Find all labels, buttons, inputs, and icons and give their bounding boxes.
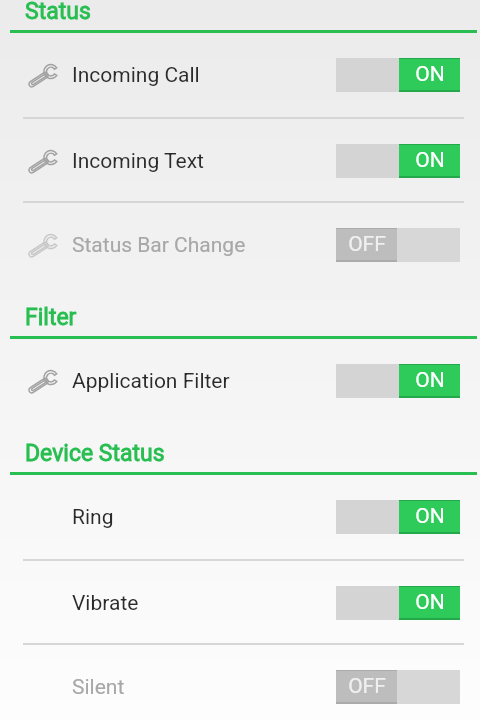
button[interactable]: Incoming Call: [0, 33, 480, 117]
button[interactable]: Toggle on: [336, 58, 460, 92]
staticText: Ring: [72, 505, 114, 530]
staticText: Incoming Text: [72, 149, 204, 174]
staticText: ON: [415, 148, 445, 173]
button[interactable]: Status Bar Change: [0, 203, 480, 287]
button[interactable]: Toggle on: [336, 144, 460, 178]
button[interactable]: Toggle off: [336, 228, 460, 262]
button[interactable]: Vibrate: [0, 561, 480, 645]
button[interactable]: Toggle on: [336, 364, 460, 398]
button[interactable]: Toggle on: [336, 500, 460, 534]
staticText: Status: [25, 0, 91, 25]
staticText: Vibrate: [72, 591, 139, 616]
button[interactable]: Application Filter: [0, 339, 480, 423]
button[interactable]: Toggle off: [336, 670, 460, 704]
staticText: Incoming Call: [72, 63, 200, 88]
staticText: ON: [415, 590, 445, 615]
button[interactable]: Silent: [0, 645, 480, 720]
button[interactable]: Incoming Text: [0, 119, 480, 203]
staticText: Status Bar Change: [72, 233, 246, 258]
button[interactable]: Ring: [0, 475, 480, 559]
staticText: OFF: [348, 674, 386, 699]
button[interactable]: Toggle on: [336, 586, 460, 620]
staticText: Filter: [25, 304, 77, 331]
staticText: Silent: [72, 675, 125, 700]
staticText: ON: [415, 504, 445, 529]
staticText: Device Status: [25, 440, 165, 467]
staticText: ON: [415, 368, 445, 393]
staticText: OFF: [348, 232, 386, 257]
staticText: Application Filter: [72, 369, 230, 394]
staticText: ON: [415, 62, 445, 87]
